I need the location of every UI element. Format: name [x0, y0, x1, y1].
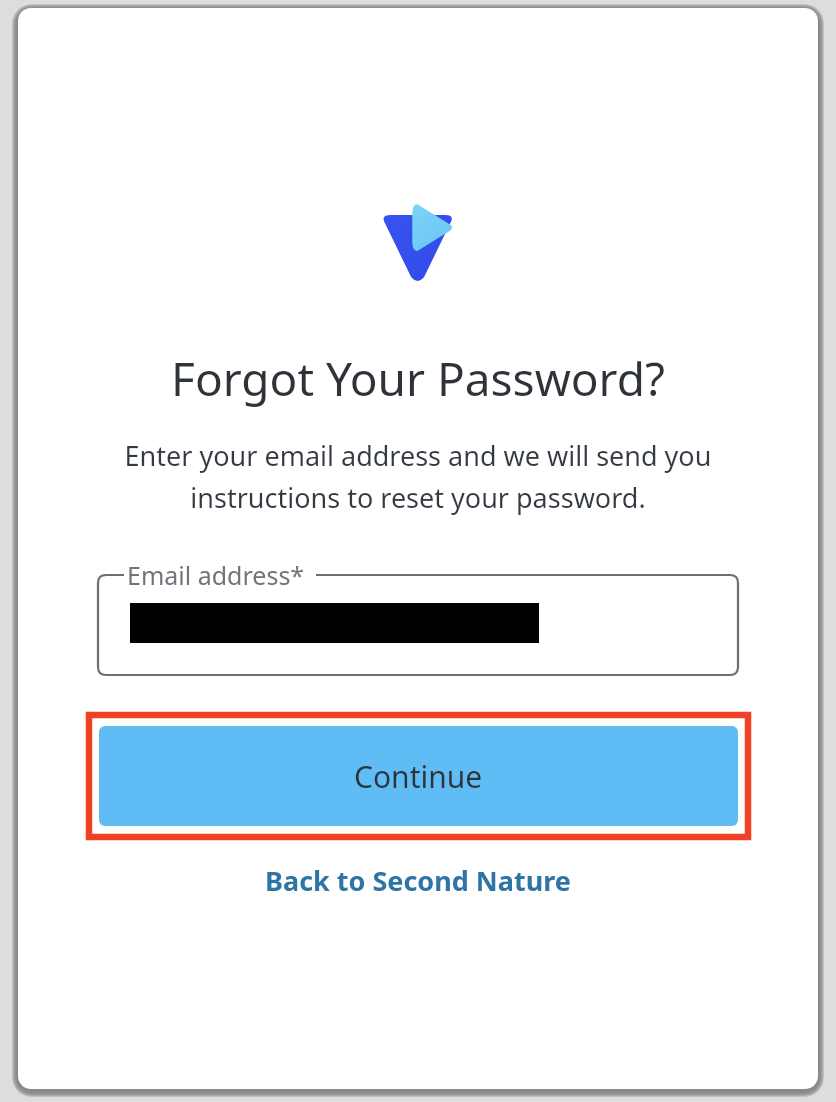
button[interactable]: Continue	[99, 726, 738, 826]
button[interactable]: Back to Second Nature	[255, 856, 581, 905]
staticText: Continue	[354, 756, 483, 797]
button[interactable]: Email address*	[98, 559, 738, 675]
staticText: Back to Second Nature	[265, 862, 571, 899]
staticText: Email address*	[127, 558, 305, 592]
staticText: Forgot Your Password?	[171, 347, 665, 410]
staticText: Enter your email address and we will sen…	[98, 437, 738, 516]
